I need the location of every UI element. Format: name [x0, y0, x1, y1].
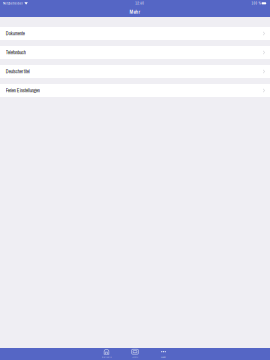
- button[interactable]: Startseite: [92, 348, 121, 360]
- staticText: Archiv: [132, 355, 138, 359]
- staticText: Netzbetreiber: [3, 1, 23, 6]
- button[interactable]: Mehr: [149, 348, 178, 360]
- button[interactable]: Deutscher titel: [0, 65, 270, 78]
- staticText: Dokumente: [6, 30, 25, 37]
- staticText: Telefonbuch: [6, 49, 26, 56]
- button[interactable]: Dokumente: [0, 27, 270, 40]
- staticText: 100 %: [251, 1, 260, 6]
- staticText: Startseite: [101, 355, 111, 359]
- button[interactable]: Archiv: [121, 348, 149, 360]
- staticText: Mehr: [129, 8, 140, 15]
- button[interactable]: Ferien Einstellungen: [0, 84, 270, 97]
- staticText: Mehr: [161, 355, 166, 359]
- staticText: 12:40: [135, 1, 144, 6]
- staticText: Deutscher titel: [6, 68, 30, 75]
- staticText: Ferien Einstellungen: [6, 87, 40, 94]
- button[interactable]: Telefonbuch: [0, 46, 270, 59]
